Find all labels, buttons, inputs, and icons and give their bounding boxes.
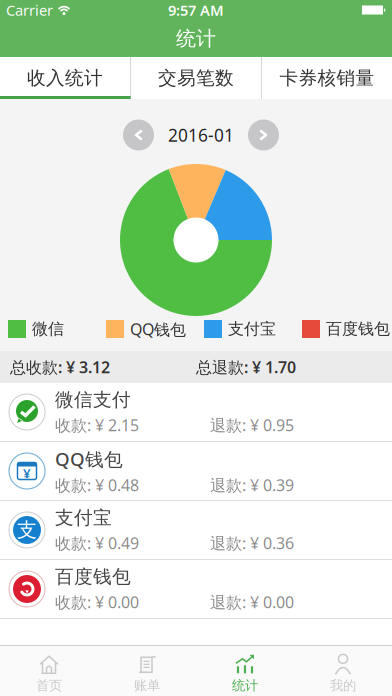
staticText: 总退款: ¥ 1.70 [196,356,296,378]
button[interactable]: 统计 [196,646,294,696]
staticText: 统计 [232,677,258,694]
staticText: 百度钱包 [55,565,131,588]
staticText: 收入统计 [27,66,103,89]
staticText: 9:57 AM [168,0,224,20]
button[interactable]: 卡券核销量 [262,57,392,99]
staticText: 2016-01 [168,123,234,146]
button[interactable]: 首页 [0,646,98,696]
button[interactable]: 百度钱包 [0,560,392,618]
staticText: 卡券核销量 [279,66,374,89]
staticText: QQ钱包 [55,446,123,471]
button[interactable]: 微信支付 [0,383,392,441]
staticText: 百度钱包 [326,319,390,339]
staticText: 退款: ¥ 0.39 [210,474,294,495]
staticText: 首页 [36,677,62,694]
staticText: 账单 [134,677,160,694]
staticText: QQ钱包 [130,318,186,340]
staticText: 退款: ¥ 0.36 [210,532,294,553]
staticText: 退款: ¥ 0.95 [210,414,294,435]
button[interactable]: 我的 [294,646,392,696]
staticText: 支付宝 [55,506,112,529]
staticText: 支 [17,518,37,542]
button[interactable]: 账单 [98,646,196,696]
button[interactable] [123,119,154,150]
button[interactable] [248,119,279,150]
button[interactable]: 支 [0,501,392,559]
staticText: ¥ [23,464,31,482]
staticText: 微信 [32,319,64,339]
staticText: 我的 [330,677,356,694]
staticText: 退款: ¥ 0.00 [210,591,294,612]
staticText: 支付宝 [228,319,276,339]
staticText: 收款: ¥ 0.49 [55,532,139,553]
staticText: 微信支付 [55,388,131,411]
staticText: 交易笔数 [158,66,234,89]
button[interactable]: 交易笔数 [131,57,261,99]
staticText: 统计 [176,26,216,51]
button[interactable]: ¥ [0,442,392,500]
staticText: Carrier [6,0,53,20]
button[interactable]: 收入统计 [0,57,130,99]
staticText: 收款: ¥ 0.00 [55,591,139,612]
staticText: 收款: ¥ 0.48 [55,474,139,495]
staticText: 总收款: ¥ 3.12 [10,356,110,378]
staticText: 收款: ¥ 2.15 [55,414,139,435]
